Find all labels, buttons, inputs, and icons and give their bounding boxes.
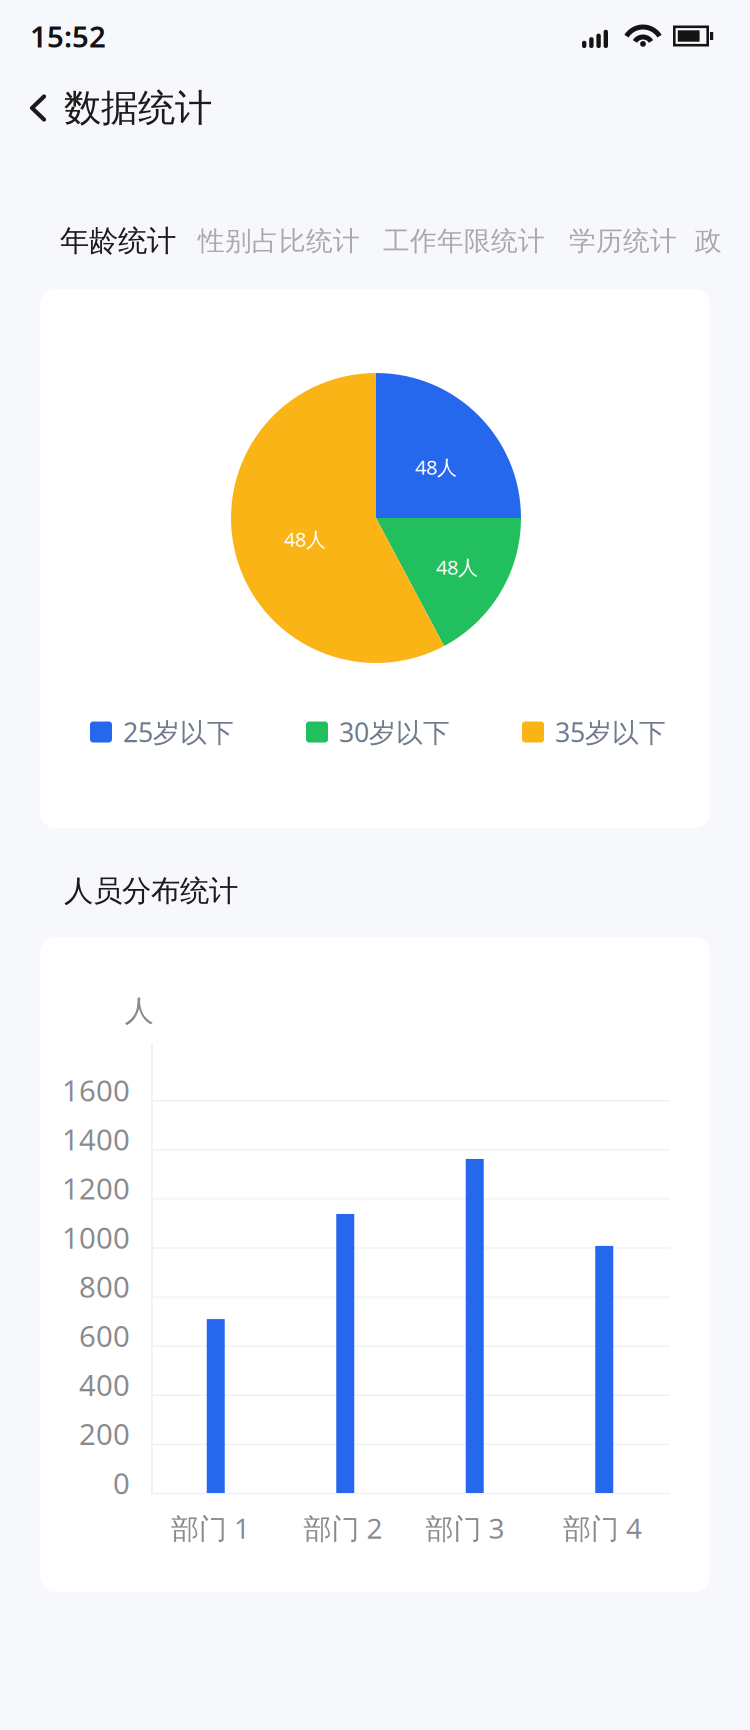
staticText: 部门 4 (563, 1509, 642, 1547)
staticText: 工作年限统计 (383, 225, 545, 257)
button[interactable]: 政 (695, 225, 722, 257)
staticText: 人员分布统计 (64, 873, 238, 909)
staticText: 800 (79, 1267, 130, 1306)
staticText: 性别占比统计 (198, 225, 360, 257)
staticText: 政 (695, 225, 722, 257)
staticText: 0 (113, 1463, 130, 1502)
button[interactable]: 工作年限统计 (383, 225, 545, 257)
button[interactable]: 年龄统计 (60, 223, 176, 259)
staticText: 1600 (62, 1070, 130, 1109)
staticText: 30岁以下 (339, 714, 450, 750)
staticText: 200 (79, 1414, 130, 1453)
button[interactable]: 学历统计 (569, 225, 677, 257)
staticText: 部门 3 (425, 1509, 504, 1547)
staticText: 15:52 (30, 16, 106, 55)
staticText: 1000 (62, 1218, 130, 1257)
staticText: 1200 (62, 1169, 130, 1208)
staticText: 600 (79, 1316, 130, 1355)
staticText: 25岁以下 (123, 714, 234, 750)
staticText: 人 (124, 993, 153, 1029)
button[interactable]: 性别占比统计 (198, 225, 360, 257)
staticText: 48人 (436, 554, 478, 580)
staticText: 年龄统计 (60, 223, 176, 259)
staticText: 1400 (62, 1120, 130, 1159)
staticText: 部门 1 (171, 1509, 250, 1547)
button[interactable]: Back (0, 70, 64, 145)
staticText: 48人 (284, 526, 326, 552)
staticText: 部门 2 (303, 1509, 382, 1547)
staticText: 48人 (415, 454, 457, 480)
staticText: 35岁以下 (555, 714, 666, 750)
staticText: 数据统计 (64, 85, 212, 131)
staticText: 学历统计 (569, 225, 677, 257)
staticText: 400 (79, 1365, 130, 1404)
